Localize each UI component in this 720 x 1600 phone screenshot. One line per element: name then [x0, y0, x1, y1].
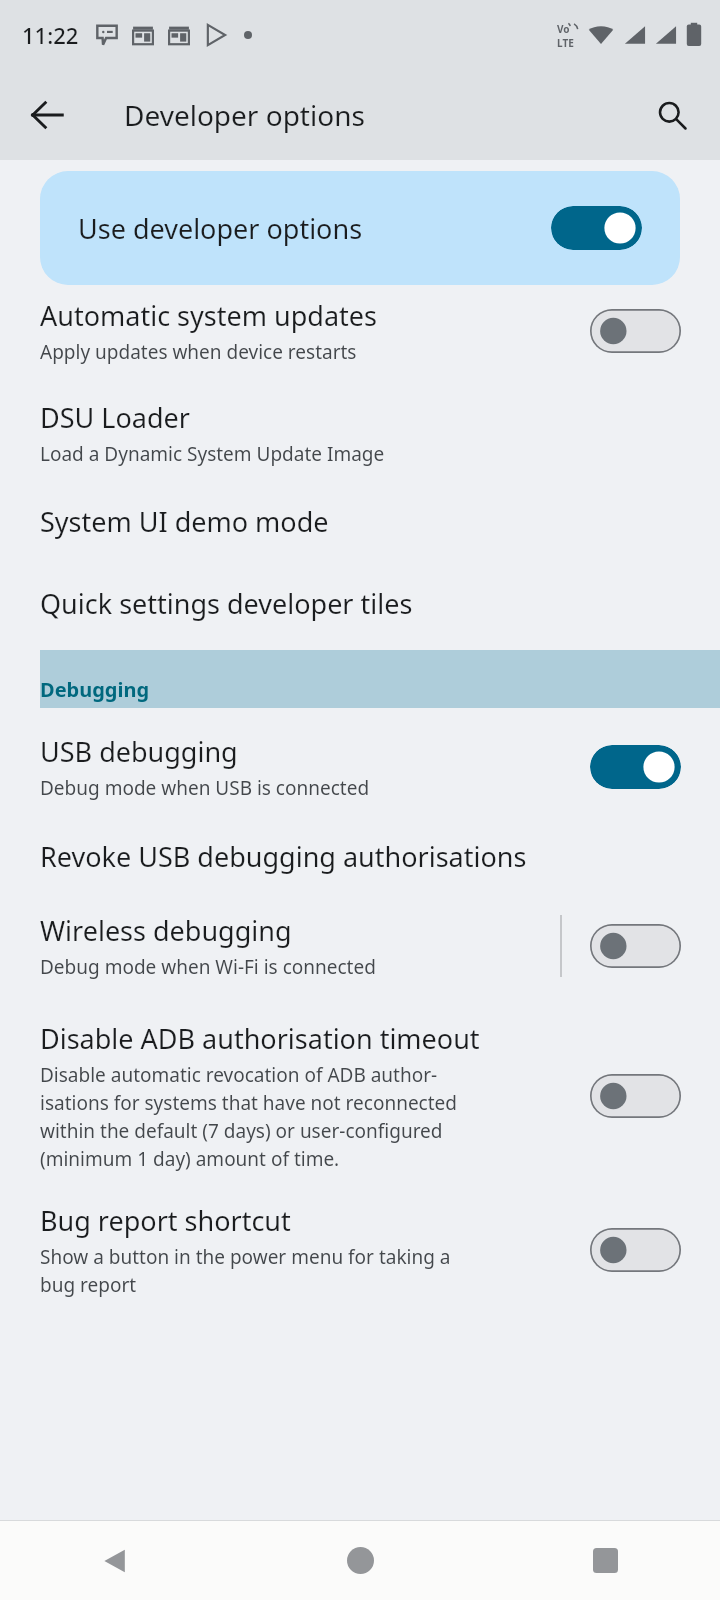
staticText: Debug mode when Wi-Fi is connected	[40, 954, 376, 980]
button[interactable]: DSU Loader	[0, 399, 720, 467]
button[interactable]: Use developer options	[40, 171, 680, 285]
staticText: Load a Dynamic System Update Image	[40, 441, 385, 467]
staticText: 11:22	[22, 20, 79, 50]
staticText: Quick settings developer tiles	[40, 585, 413, 622]
staticText: Vo	[557, 22, 570, 36]
button[interactable]: Recents	[480, 1521, 720, 1600]
button[interactable]: Automatic system updates	[0, 297, 720, 365]
staticText: Developer options	[124, 96, 365, 134]
staticText: Apply updates when device restarts	[40, 339, 357, 365]
button[interactable]: Quick settings developer tiles	[0, 585, 720, 622]
button[interactable]: Toggle off	[590, 924, 681, 968]
staticText: Show a button in the power menu for taki…	[40, 1244, 451, 1298]
button[interactable]: System UI demo mode	[0, 503, 720, 540]
staticText: System UI demo mode	[40, 503, 329, 540]
button[interactable]: Toggle on	[551, 206, 642, 250]
staticText: Debugging	[40, 676, 150, 703]
button[interactable]: Disable ADB authorisation timeout	[0, 1020, 720, 1172]
staticText: Bug report shortcut	[40, 1202, 291, 1239]
staticText: Debug mode when USB is connected	[40, 775, 370, 801]
button[interactable]: Search	[642, 85, 702, 145]
staticText: Revoke USB debugging authorisations	[40, 838, 527, 875]
button[interactable]: Toggle off	[590, 1074, 681, 1118]
staticText: DSU Loader	[40, 399, 190, 436]
staticText: Wireless debugging	[40, 912, 292, 949]
staticText: Disable automatic revocation of ADB auth…	[40, 1062, 457, 1172]
button[interactable]: Back	[0, 1521, 240, 1600]
staticText: USB debugging	[40, 733, 238, 770]
button[interactable]: Revoke USB debugging authorisations	[0, 838, 720, 875]
button[interactable]: Wireless debugging	[0, 912, 720, 980]
staticText: Automatic system updates	[40, 297, 377, 334]
button[interactable]: Back	[14, 82, 80, 148]
button[interactable]: USB debugging	[0, 733, 720, 801]
button[interactable]: Toggle on	[590, 745, 681, 789]
staticText: Disable ADB authorisation timeout	[40, 1020, 480, 1057]
button[interactable]: Toggle off	[590, 1228, 681, 1272]
staticText: LTE	[557, 36, 574, 48]
button[interactable]: Home	[240, 1521, 480, 1600]
staticText: Use developer options	[78, 210, 551, 247]
button[interactable]: Bug report shortcut	[0, 1202, 720, 1298]
button[interactable]: Toggle off	[590, 309, 681, 353]
